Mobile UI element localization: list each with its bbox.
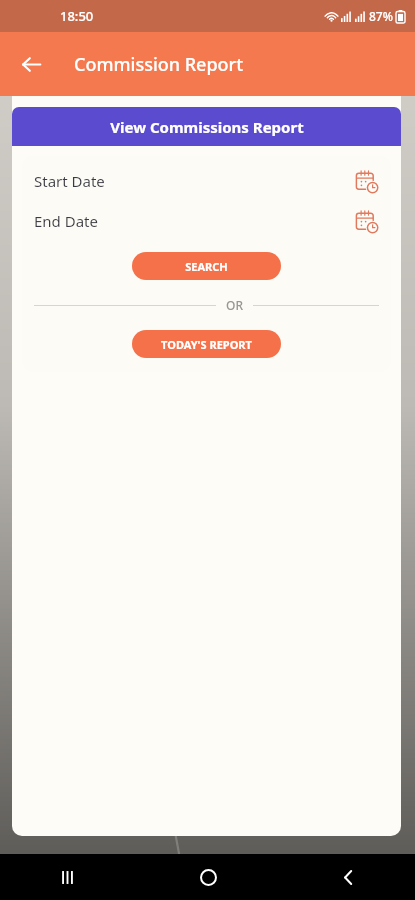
staticText: 87% [369,8,393,24]
button[interactable]: Back [10,43,52,85]
staticText: 18:50 [60,7,94,25]
button[interactable]: SEARCH [132,252,281,280]
button[interactable]: Back [327,856,369,898]
staticText: Start Date [34,171,105,191]
staticText: TODAY'S REPORT [161,337,252,352]
button[interactable]: TODAY'S REPORT [132,330,281,358]
button[interactable]: End Date [34,206,379,236]
button[interactable]: Recents [46,856,88,898]
other: Pick Start Date [353,168,379,194]
button[interactable]: Home [187,856,229,898]
other: Pick End Date [353,208,379,234]
staticText: SEARCH [185,259,228,274]
staticText: View Commissions Report [110,117,304,137]
staticText: End Date [34,211,98,231]
staticText: Commission Report [74,52,244,77]
button[interactable]: Start Date [34,166,379,196]
staticText: OR [226,297,243,313]
